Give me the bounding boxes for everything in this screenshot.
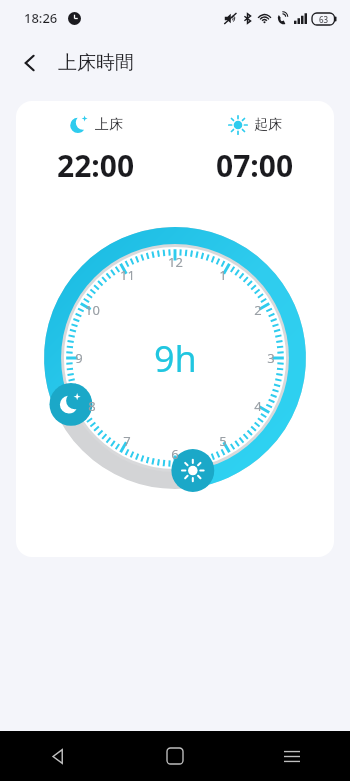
button[interactable]: Home (116, 731, 233, 781)
staticText: 1 (219, 266, 227, 284)
button[interactable]: Back (8, 41, 52, 85)
staticText: 22:00 (57, 145, 135, 186)
button[interactable]: Recent apps (233, 731, 350, 781)
staticText: 10 (85, 301, 100, 319)
staticText: 07:00 (216, 145, 294, 186)
staticText: 上床 (95, 116, 123, 134)
staticText: 6 (171, 445, 179, 463)
staticText: 12 (168, 253, 183, 271)
button[interactable]: 上床 (16, 115, 175, 186)
staticText: 8 (88, 397, 96, 415)
staticText: 3 (267, 349, 275, 367)
staticText: 5 (219, 432, 227, 450)
staticText: 2 (254, 301, 262, 319)
staticText: 9h (154, 334, 197, 383)
staticText: 9 (75, 349, 83, 367)
staticText: 4 (254, 397, 262, 415)
staticText: 7 (123, 432, 131, 450)
button[interactable]: 起床 (175, 115, 334, 186)
staticText: 11 (120, 266, 135, 284)
button[interactable]: Back (0, 731, 116, 781)
staticText: 18:26 (24, 9, 58, 27)
staticText: 63 (319, 14, 329, 25)
button[interactable]: Sleep duration dial (25, 208, 325, 508)
staticText: 上床時間 (58, 51, 134, 75)
staticText: 起床 (254, 116, 282, 134)
